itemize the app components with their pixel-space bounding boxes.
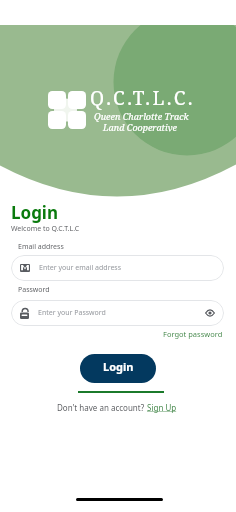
staticText: Don't have an account? <box>57 402 147 413</box>
staticText: Enter your email address <box>39 263 122 273</box>
other: Show password <box>205 309 215 317</box>
button[interactable]: Enter your Password <box>11 300 224 326</box>
button[interactable]: Forgot password <box>161 328 225 340</box>
staticText: Login <box>103 359 134 374</box>
staticText: Enter your Password <box>38 308 106 318</box>
staticText: Welcome to Q.C.T.L.C <box>11 224 80 234</box>
staticText: Password <box>18 285 50 295</box>
staticText: Forgot password <box>163 329 223 339</box>
staticText: Login <box>11 201 59 224</box>
staticText: Q.C.T.L.C. <box>90 85 196 111</box>
staticText: Queen Charlotte Track <box>94 110 189 122</box>
button[interactable]: Login <box>80 354 156 383</box>
staticText: Email address <box>18 242 64 252</box>
staticText: Land Cooperative <box>103 121 177 133</box>
staticText: Sign Up <box>147 402 177 413</box>
button[interactable]: Sign Up <box>147 402 177 413</box>
button[interactable]: Enter your email address <box>11 255 224 281</box>
